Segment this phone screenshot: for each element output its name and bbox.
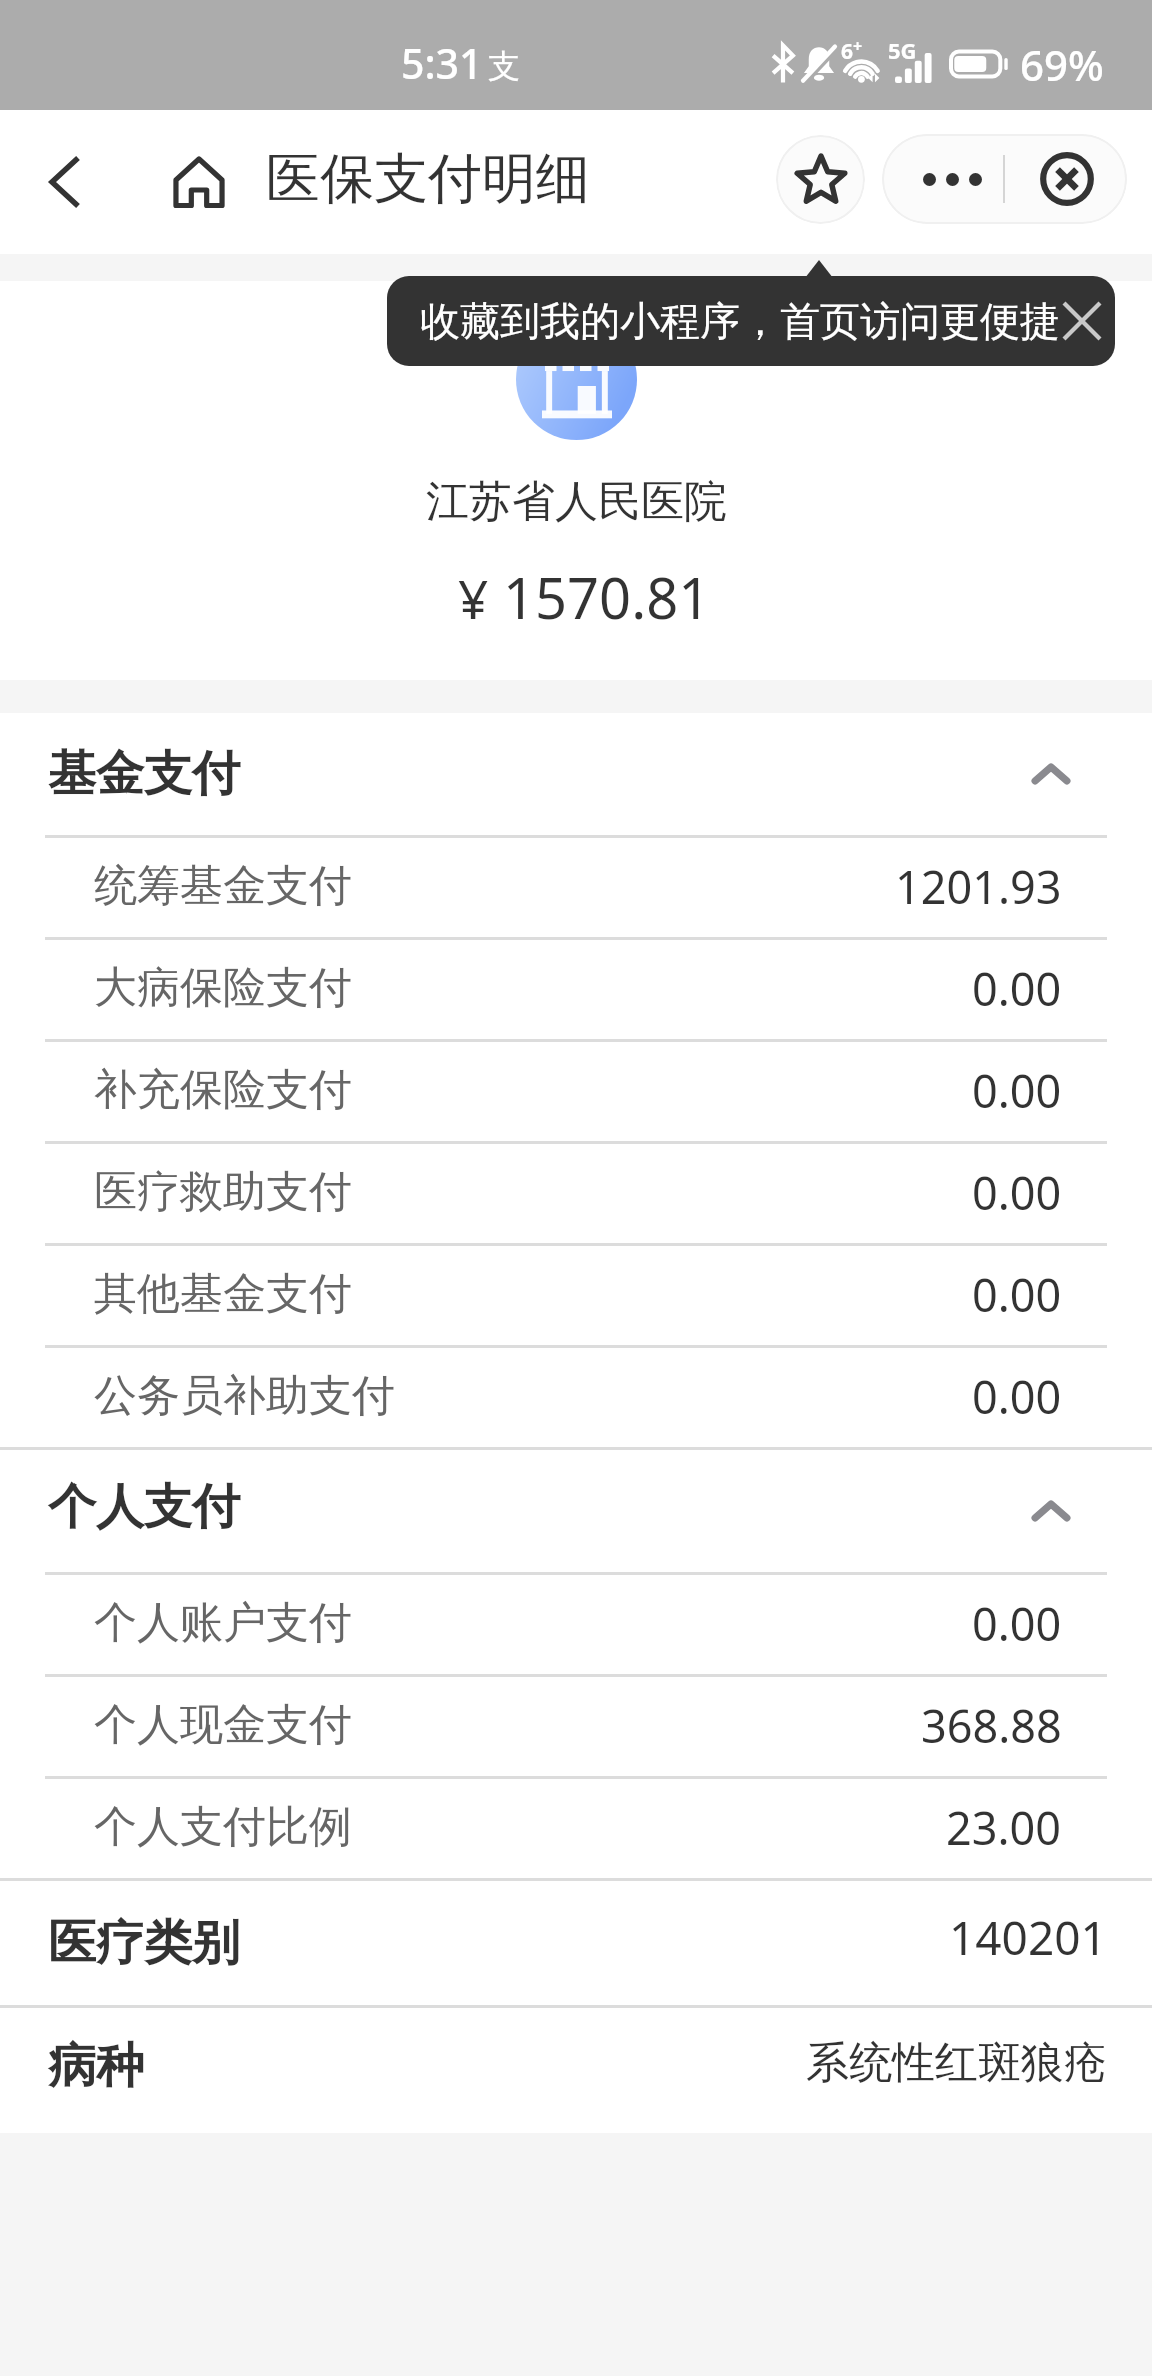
staticText: 系统性红斑狼疮 [806,2036,1107,2090]
button[interactable]: 病种 [0,2008,1152,2133]
staticText: 个人账户支付 [94,1596,352,1650]
staticText: 基金支付 [48,744,240,804]
staticText: 1570.81 [503,559,711,635]
staticText: 5G [888,35,917,65]
staticText: 0.00 [972,1366,1062,1427]
button[interactable]: Back [30,147,100,217]
staticText: 医保支付明细 [266,145,590,213]
button[interactable]: 医疗救助支付 [0,1141,1152,1243]
staticText: 公务员补助支付 [94,1369,395,1423]
staticText: 69% [1020,36,1104,93]
staticText: 医疗类别 [48,1913,240,1973]
button[interactable]: 其他基金支付 [0,1243,1152,1345]
button[interactable]: 公务员补助支付 [0,1345,1152,1447]
button[interactable]: 个人支付比例 [0,1776,1152,1878]
staticText: 5:31 [401,35,483,91]
staticText: ¥ [458,562,489,634]
button[interactable]: Favorite [776,135,865,224]
staticText: 大病保险支付 [94,961,352,1015]
staticText: 病种 [48,2036,144,2096]
button[interactable]: 个人支付 [0,1450,1152,1572]
staticText: 23.00 [946,1797,1062,1858]
staticText: 0.00 [972,1162,1062,1223]
staticText: 1201.93 [895,856,1062,917]
button[interactable]: 基金支付 [0,713,1152,835]
staticText: 0.00 [972,1593,1062,1654]
staticText: 医疗救助支付 [94,1165,352,1219]
staticText: 368.88 [921,1695,1062,1756]
staticText: 0.00 [972,958,1062,1019]
staticText: 个人支付比例 [94,1800,352,1854]
button[interactable]: Dismiss tip [1049,288,1115,354]
staticText: + [853,35,863,57]
button[interactable]: More options [882,134,1004,224]
staticText: 个人支付 [48,1477,240,1537]
button[interactable]: 大病保险支付 [0,937,1152,1039]
button[interactable]: 补充保险支付 [0,1039,1152,1141]
button[interactable]: Close [1005,134,1127,224]
button[interactable]: 个人账户支付 [0,1572,1152,1674]
staticText: 补充保险支付 [94,1063,352,1117]
staticText: 收藏到我的小程序，首页访问更便捷 [420,296,1060,346]
staticText: 其他基金支付 [94,1267,352,1321]
button[interactable]: Home [164,147,234,217]
staticText: 140201 [949,1906,1107,1969]
staticText: 江苏省人民医院 [426,475,727,529]
staticText: 0.00 [972,1264,1062,1325]
staticText: 6 [841,37,854,66]
staticText: 0.00 [972,1060,1062,1121]
button[interactable]: 医疗类别 [0,1881,1152,2005]
staticText: 个人现金支付 [94,1698,352,1752]
button[interactable]: 个人现金支付 [0,1674,1152,1776]
staticText: 支 [488,46,520,86]
button[interactable]: 统筹基金支付 [0,835,1152,937]
staticText: 统筹基金支付 [94,859,352,913]
